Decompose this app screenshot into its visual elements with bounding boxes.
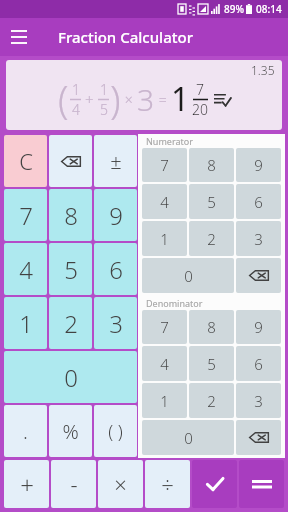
staticText: 1 [72, 80, 80, 99]
button[interactable]: Backspace [236, 258, 281, 293]
staticText: 9 [254, 317, 263, 337]
staticText: Denominator [146, 297, 203, 309]
staticText: 6 [109, 253, 123, 286]
staticText: 0 [64, 361, 78, 394]
staticText: - [70, 469, 78, 499]
button[interactable]: 0 [142, 420, 234, 455]
staticText: 7 [196, 80, 204, 99]
staticText: . [23, 418, 28, 445]
staticText: 08:14 [256, 2, 282, 16]
staticText: 1 [160, 391, 169, 411]
button[interactable]: 8 [189, 148, 234, 182]
staticText: 6 [254, 192, 263, 212]
staticText: 0 [184, 428, 193, 448]
staticText: 5 [100, 100, 108, 119]
staticText: 1 [100, 80, 108, 99]
button[interactable]: 5 [189, 184, 234, 219]
staticText: % [62, 418, 79, 445]
button[interactable]: 3 [236, 221, 281, 256]
staticText: Numerator [146, 135, 193, 147]
button[interactable]: 2 [189, 221, 234, 256]
button[interactable]: 7 [4, 189, 47, 241]
button[interactable]: 5 [49, 243, 92, 295]
button[interactable]: 1 [4, 297, 47, 349]
button[interactable]: 0 [4, 351, 137, 403]
button[interactable]: Confirm [192, 460, 237, 508]
button[interactable]: 8 [49, 189, 92, 241]
button[interactable]: Backspace [49, 135, 92, 187]
staticText: 4 [160, 354, 169, 374]
button[interactable]: 2 [189, 383, 234, 418]
staticText: ± [110, 148, 122, 175]
button[interactable]: 2 [49, 297, 92, 349]
staticText: 0 [184, 266, 193, 286]
staticText: 1 [19, 307, 33, 340]
staticText: ) [110, 73, 121, 125]
staticText: 7 [160, 155, 169, 175]
staticText: 5 [64, 253, 78, 286]
staticText: ÷ [161, 469, 174, 499]
staticText: + [81, 89, 98, 109]
staticText: 2 [64, 307, 78, 340]
staticText: 8 [64, 199, 78, 232]
staticText: 4 [19, 253, 33, 286]
button[interactable]: 1.35 [6, 60, 282, 130]
button[interactable]: ± [94, 135, 137, 187]
staticText: 89% [224, 2, 244, 16]
button[interactable]: 0 [142, 258, 234, 293]
button[interactable]: . [4, 405, 47, 457]
staticText: C [19, 146, 33, 176]
button[interactable]: 7 [142, 148, 187, 182]
staticText: ( [58, 73, 69, 125]
button[interactable]: 1 [142, 221, 187, 256]
staticText: 2 [207, 229, 216, 249]
staticText: 8 [207, 317, 216, 337]
staticText: 3 [254, 229, 263, 249]
button[interactable]: 9 [236, 310, 281, 344]
button[interactable]: 4 [4, 243, 47, 295]
staticText: 1.35 [251, 62, 275, 78]
staticText: 3 [254, 391, 263, 411]
button[interactable]: Menu [0, 18, 38, 56]
staticText: × [121, 90, 137, 109]
button[interactable]: 9 [94, 189, 137, 241]
staticText: 1 [171, 77, 190, 121]
button[interactable]: 6 [236, 346, 281, 381]
staticText: 9 [254, 155, 263, 175]
staticText: 2 [207, 391, 216, 411]
button[interactable]: 5 [189, 346, 234, 381]
button[interactable]: Equals [239, 460, 284, 508]
staticText: 4 [160, 192, 169, 212]
button[interactable]: 4 [142, 346, 187, 381]
staticText: 5 [207, 192, 216, 212]
button[interactable]: 8 [189, 310, 234, 344]
button[interactable]: 7 [142, 310, 187, 344]
staticText: 20 [192, 100, 208, 119]
button[interactable]: 3 [94, 297, 137, 349]
button[interactable]: % [49, 405, 92, 457]
staticText: 4 [72, 100, 80, 119]
staticText: + [20, 468, 34, 501]
button[interactable]: 6 [236, 184, 281, 219]
other: More [214, 92, 231, 106]
staticText: Fraction Calculator [58, 27, 193, 47]
button[interactable]: 4 [142, 184, 187, 219]
button[interactable]: 6 [94, 243, 137, 295]
button[interactable]: 1 [142, 383, 187, 418]
staticText: ( ) [108, 419, 123, 444]
button[interactable]: + [4, 460, 49, 508]
button[interactable]: Backspace [236, 420, 281, 455]
staticText: 7 [160, 317, 169, 337]
button[interactable]: C [4, 135, 47, 187]
staticText: 6 [254, 354, 263, 374]
button[interactable]: 3 [236, 383, 281, 418]
button[interactable]: × [98, 460, 143, 508]
button[interactable]: ( ) [94, 405, 137, 457]
staticText: × [114, 469, 127, 499]
staticText: 3 [109, 307, 123, 340]
staticText: = [155, 90, 171, 109]
button[interactable]: - [51, 460, 96, 508]
button[interactable]: 9 [236, 148, 281, 182]
button[interactable]: ÷ [145, 460, 190, 508]
staticText: 5 [207, 354, 216, 374]
